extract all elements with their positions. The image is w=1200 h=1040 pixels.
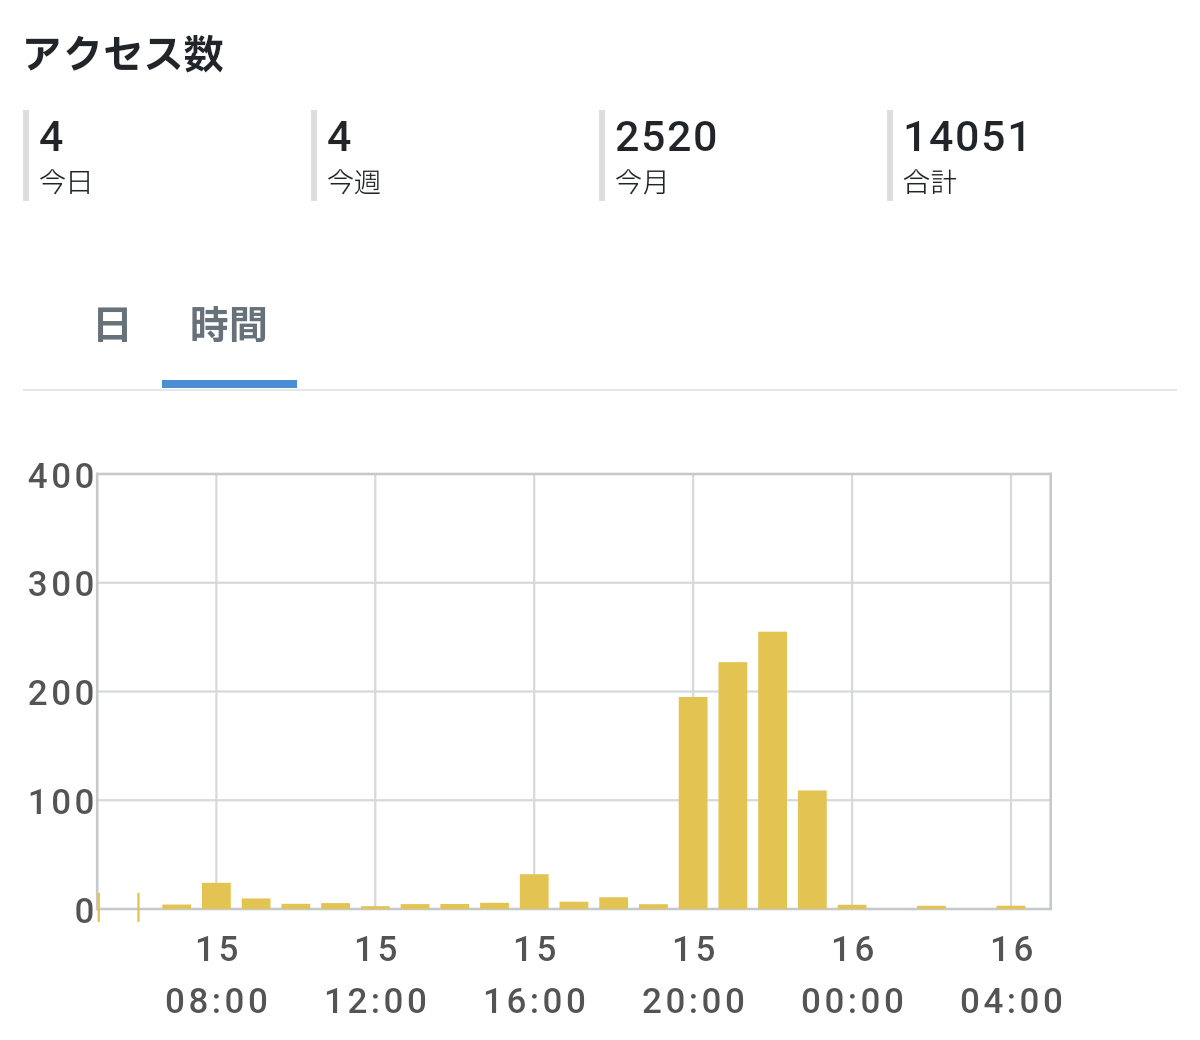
- staticText: 日: [93, 298, 133, 356]
- staticText: 今週: [327, 163, 381, 203]
- staticText: 00:00: [801, 981, 908, 1022]
- button[interactable]: 日: [71, 291, 155, 388]
- staticText: 400: [0, 456, 98, 497]
- staticText: 合計: [903, 163, 957, 203]
- staticText: 0: [0, 891, 98, 932]
- staticText: 4: [39, 111, 66, 161]
- staticText: 今日: [39, 163, 93, 203]
- staticText: 16:00: [483, 981, 590, 1022]
- staticText: 16: [990, 929, 1037, 970]
- staticText: 今月: [615, 163, 669, 203]
- staticText: 15: [513, 929, 560, 970]
- staticText: 時間: [190, 298, 269, 356]
- staticText: アクセス数: [22, 26, 225, 87]
- staticText: 14051: [903, 111, 1034, 161]
- staticText: 20:00: [642, 981, 749, 1022]
- staticText: 200: [0, 673, 98, 714]
- button[interactable]: 時間: [162, 291, 296, 388]
- staticText: 15: [195, 929, 242, 970]
- staticText: 04:00: [960, 981, 1067, 1022]
- staticText: 12:00: [324, 981, 431, 1022]
- staticText: 15: [672, 929, 719, 970]
- staticText: 300: [0, 564, 98, 605]
- staticText: 2520: [615, 111, 720, 161]
- staticText: 4: [327, 111, 354, 161]
- staticText: 100: [0, 782, 98, 823]
- staticText: 15: [354, 929, 401, 970]
- staticText: 16: [831, 929, 878, 970]
- staticText: 08:00: [165, 981, 272, 1022]
